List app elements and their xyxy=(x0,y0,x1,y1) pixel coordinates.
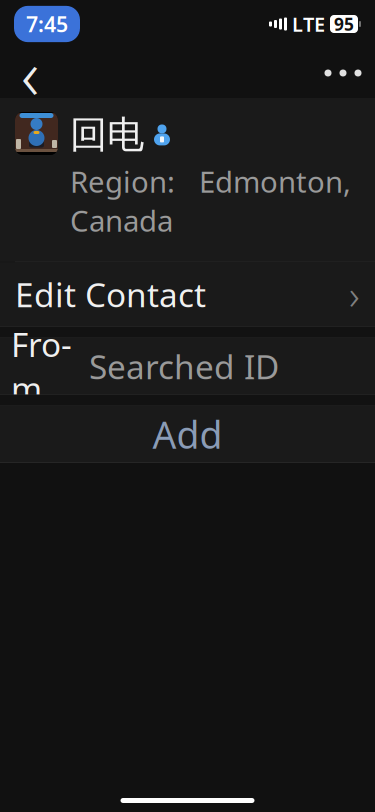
staticText: Region: Edmonton, Canada xyxy=(70,162,351,240)
button[interactable]: Edit Contact xyxy=(0,262,375,326)
staticText: ‹ xyxy=(21,27,39,119)
button[interactable]: More options xyxy=(317,50,369,96)
staticText: Searched ID xyxy=(89,344,279,388)
staticText: From xyxy=(11,322,72,410)
staticText: › xyxy=(349,268,360,321)
staticText: 7:45 xyxy=(26,10,68,38)
staticText: 回电 xyxy=(70,112,144,158)
staticText: 95 xyxy=(334,12,354,35)
staticText: LTE xyxy=(292,11,325,37)
staticText: Add xyxy=(152,409,222,459)
button[interactable]: Add xyxy=(0,406,375,462)
staticText: Edit Contact xyxy=(15,272,206,316)
button[interactable]: Back xyxy=(6,50,54,96)
